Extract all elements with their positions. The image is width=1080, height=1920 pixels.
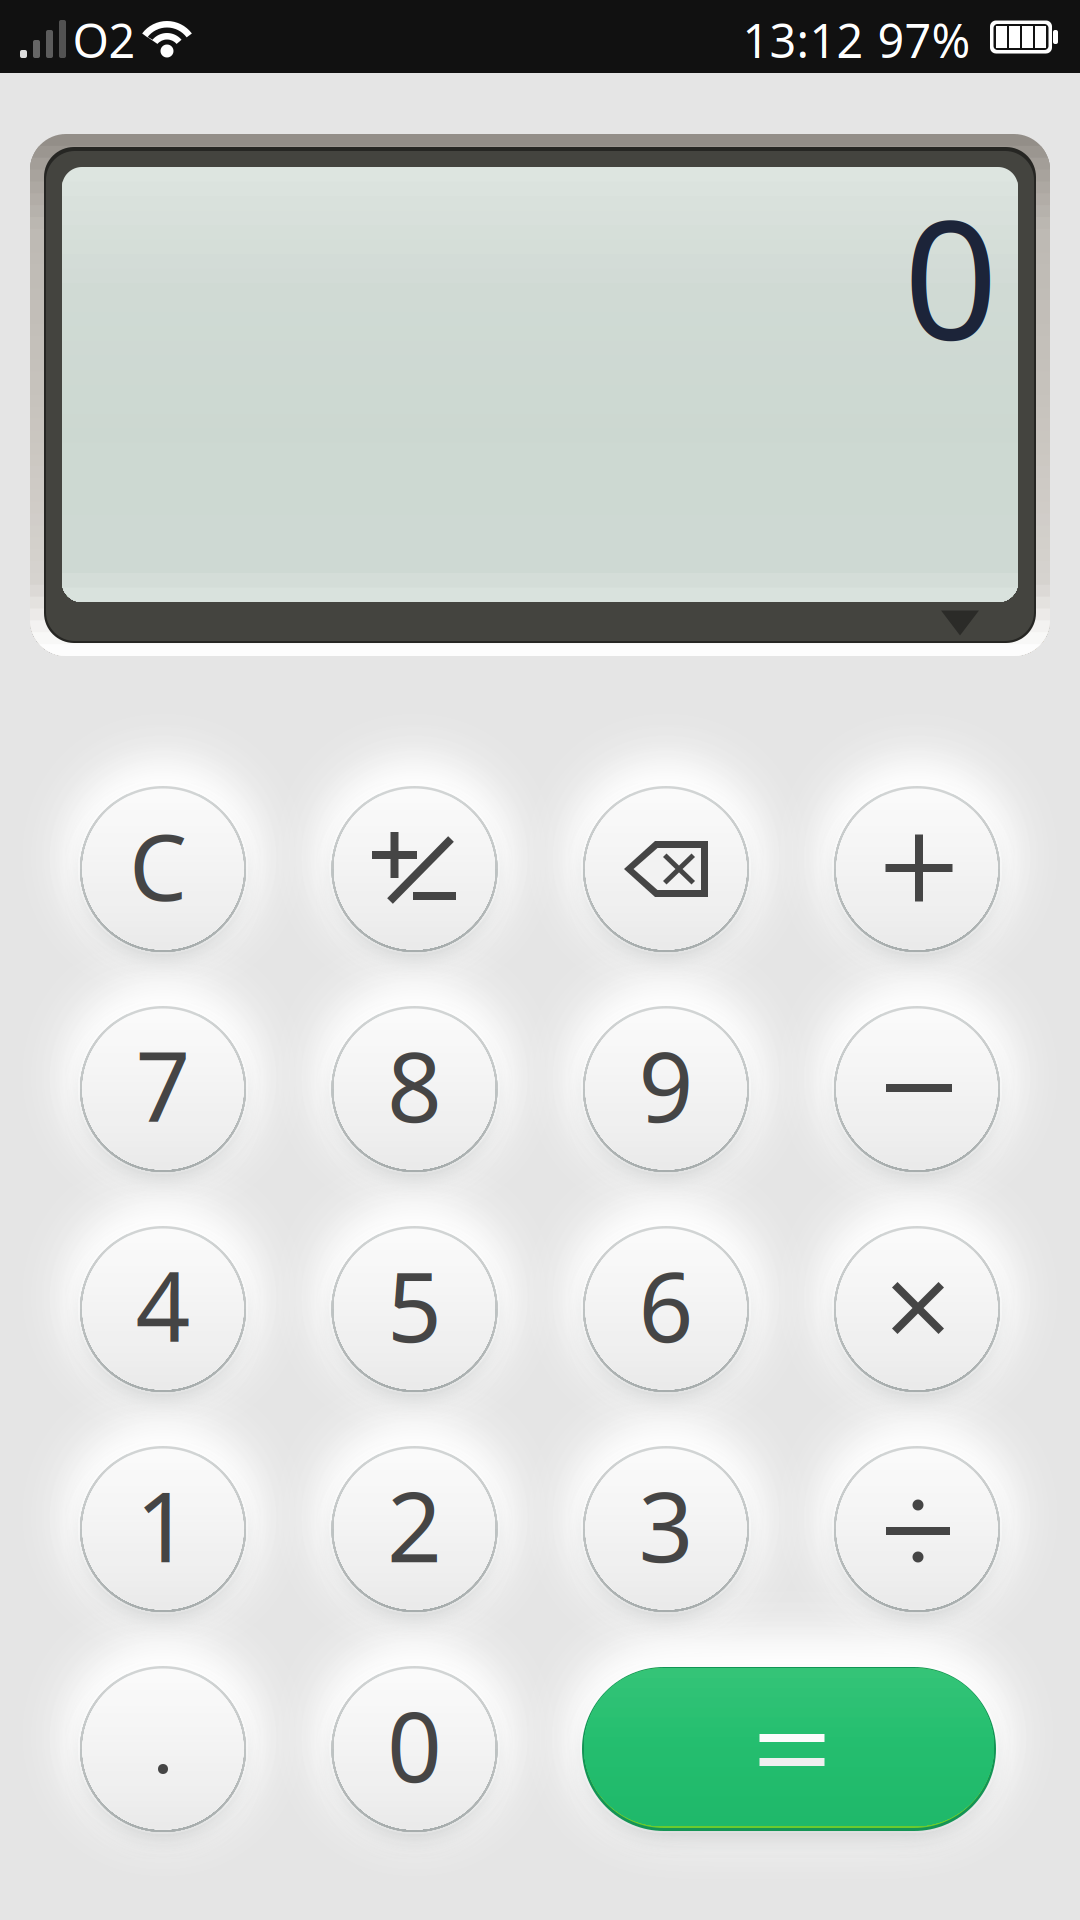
- staticText: 5: [387, 1241, 442, 1369]
- button[interactable]: 3: [583, 1446, 749, 1612]
- staticText: 0: [387, 1681, 442, 1809]
- staticText: 1: [135, 1461, 190, 1589]
- button[interactable]: 7: [80, 1006, 246, 1172]
- button[interactable]: 8: [331, 1006, 497, 1172]
- staticText: 13:12: [742, 9, 863, 71]
- button[interactable]: Multiply: [834, 1226, 1000, 1392]
- staticText: 4: [135, 1241, 190, 1369]
- staticText: 6: [638, 1241, 693, 1369]
- button[interactable]: Backspace: [583, 786, 749, 952]
- staticText: 9: [638, 1021, 693, 1149]
- button[interactable]: 1: [80, 1446, 246, 1612]
- button[interactable]: Plus: [834, 786, 1000, 952]
- button[interactable]: Equals: [582, 1667, 996, 1831]
- button[interactable]: Minus: [834, 1006, 1000, 1172]
- button[interactable]: Clear: [80, 786, 246, 952]
- staticText: 0: [903, 165, 998, 385]
- button[interactable]: 5: [331, 1226, 497, 1392]
- staticText: 7: [135, 1021, 190, 1149]
- staticText: 2: [387, 1461, 442, 1589]
- staticText: 97%: [877, 9, 970, 71]
- button[interactable]: Decimal point: [80, 1666, 246, 1832]
- staticText: 3: [638, 1461, 693, 1589]
- staticText: O2: [72, 9, 135, 71]
- button[interactable]: Divide: [834, 1446, 1000, 1612]
- button[interactable]: 0: [331, 1666, 497, 1832]
- button[interactable]: 9: [583, 1006, 749, 1172]
- staticText: 8: [387, 1021, 442, 1149]
- button[interactable]: 4: [80, 1226, 246, 1392]
- button[interactable]: 2: [331, 1446, 497, 1612]
- staticText: C: [129, 804, 187, 926]
- button[interactable]: 6: [583, 1226, 749, 1392]
- button[interactable]: Plus minus: [331, 786, 497, 952]
